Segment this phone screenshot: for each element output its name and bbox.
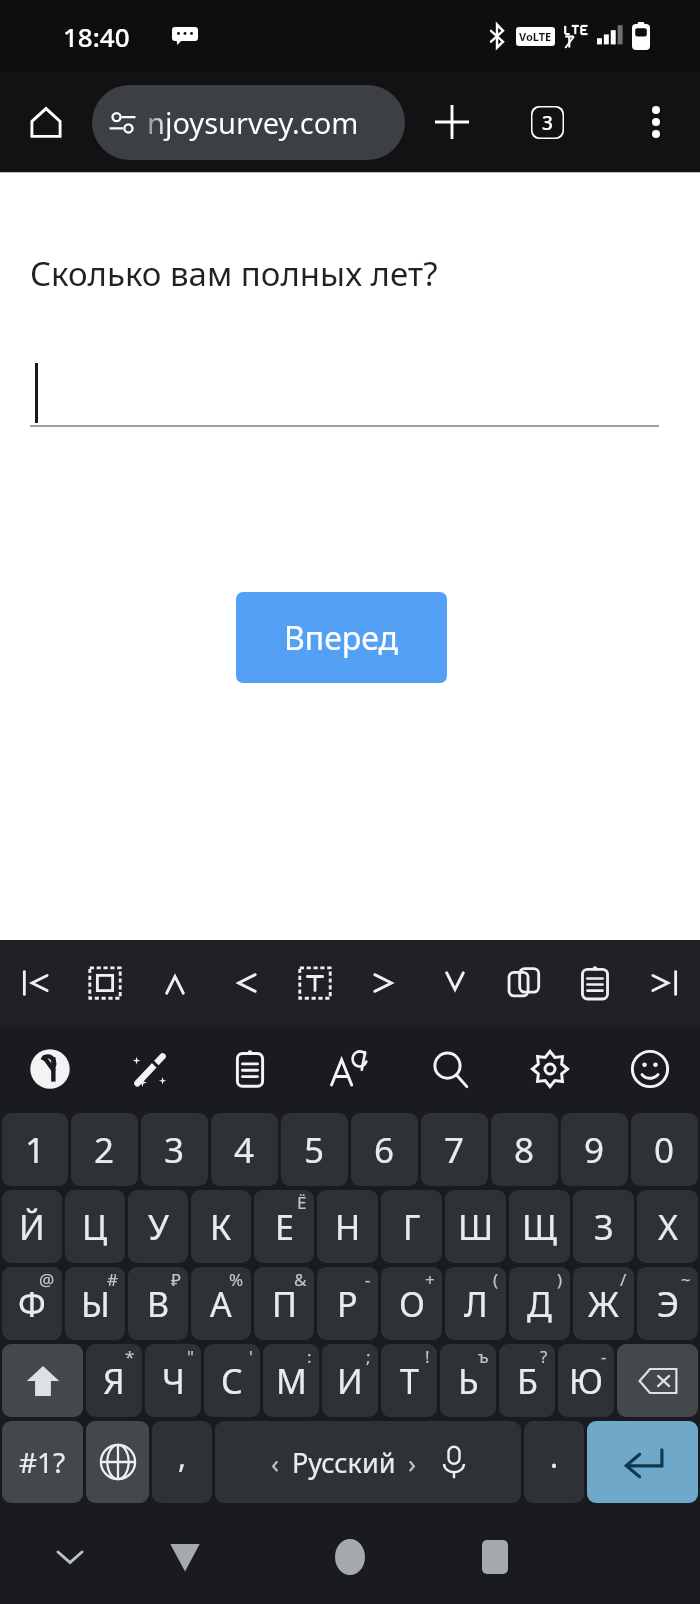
button[interactable]: Я (86, 1344, 142, 1417)
button[interactable]: К (191, 1190, 251, 1263)
button[interactable]: Back (155, 1527, 215, 1587)
button[interactable]: 5 (281, 1113, 348, 1186)
staticText: , (178, 1436, 187, 1477)
button[interactable]: Shift (2, 1344, 83, 1417)
button[interactable]: 7 (421, 1113, 488, 1186)
button[interactable]: Ч (145, 1344, 201, 1417)
button[interactable]: 3 (141, 1113, 208, 1186)
button[interactable]: Settings (500, 1025, 600, 1113)
button[interactable]: 6 (351, 1113, 418, 1186)
button[interactable]: У (128, 1190, 188, 1263)
staticText: Е (275, 1204, 294, 1250)
button[interactable]: Р (317, 1267, 378, 1340)
button[interactable]: Ю (558, 1344, 614, 1417)
staticText: С (221, 1358, 243, 1404)
staticText: ъ (478, 1345, 489, 1368)
button[interactable]: Вперед (236, 592, 447, 683)
button[interactable]: Х (637, 1190, 698, 1263)
button[interactable]: Tabs: 3 (515, 90, 579, 154)
button[interactable]: 4 (211, 1113, 278, 1186)
button[interactable]: Ы (65, 1267, 125, 1340)
staticText: Ч (162, 1358, 185, 1404)
staticText: Т (400, 1358, 419, 1404)
button[interactable]: njoysurvey.com (92, 85, 405, 160)
button[interactable]: Search (400, 1025, 500, 1113)
button[interactable]: Select text (280, 940, 350, 1025)
button[interactable]: Enter (587, 1421, 698, 1503)
staticText: ; (366, 1345, 371, 1368)
button[interactable]: New tab (420, 90, 484, 154)
button[interactable]: Ж (573, 1267, 634, 1340)
button[interactable]: Ф (2, 1267, 62, 1340)
button[interactable]: А (191, 1267, 251, 1340)
button[interactable]: Е (254, 1190, 314, 1263)
button[interactable]: . (524, 1421, 584, 1503)
button[interactable]: Right (350, 940, 420, 1025)
button[interactable]: Emoji (600, 1025, 700, 1113)
staticText: % (229, 1268, 244, 1291)
button[interactable]: Recent apps (465, 1527, 525, 1587)
staticText: / (620, 1268, 627, 1291)
button[interactable]: Copy (490, 940, 560, 1025)
button[interactable]: Left (210, 940, 280, 1025)
button[interactable]: И (322, 1344, 378, 1417)
button[interactable]: Э (637, 1267, 698, 1340)
button[interactable]: 2 (71, 1113, 138, 1186)
button[interactable]: Щ (509, 1190, 570, 1263)
button[interactable]: Magic wand (100, 1025, 200, 1113)
button[interactable]: #1? (2, 1421, 83, 1503)
staticText: Ф (18, 1281, 46, 1327)
staticText: #1? (19, 1443, 66, 1481)
button[interactable]: Ш (445, 1190, 506, 1263)
staticText: 8 (514, 1126, 535, 1174)
button[interactable]: Paste (560, 940, 630, 1025)
button[interactable]: Hide keyboard (40, 1527, 100, 1587)
button[interactable]: П (254, 1267, 314, 1340)
staticText: ₽ (171, 1268, 181, 1291)
staticText: Б (517, 1358, 538, 1404)
staticText: Г (403, 1204, 421, 1250)
button[interactable]: Г (381, 1190, 442, 1263)
button[interactable]: В (128, 1267, 188, 1340)
button[interactable]: Space (215, 1421, 521, 1503)
button[interactable]: Home (18, 94, 74, 150)
button[interactable]: Н (317, 1190, 378, 1263)
button[interactable]: , (152, 1421, 212, 1503)
button[interactable]: Л (445, 1267, 506, 1340)
staticText: › (408, 1445, 417, 1480)
button[interactable]: Backspace (617, 1344, 698, 1417)
button[interactable]: Й (2, 1190, 62, 1263)
button[interactable]: 0 (631, 1113, 698, 1186)
button[interactable]: 9 (561, 1113, 628, 1186)
staticText: В (147, 1281, 170, 1327)
staticText: 0 (654, 1126, 675, 1174)
button[interactable]: 8 (491, 1113, 558, 1186)
button[interactable]: З (573, 1190, 634, 1263)
staticText: Д (527, 1281, 552, 1327)
button[interactable]: Translate (300, 1025, 400, 1113)
button[interactable]: Т (381, 1344, 437, 1417)
button[interactable]: М (263, 1344, 319, 1417)
button[interactable] (30, 359, 659, 427)
staticText: ( (493, 1268, 499, 1291)
button[interactable]: More options (626, 92, 686, 152)
button[interactable]: Yandex (0, 1025, 100, 1113)
button[interactable]: Change language (86, 1421, 149, 1503)
staticText: 1 (25, 1126, 46, 1174)
button[interactable]: Move to end (630, 940, 700, 1025)
button[interactable]: Home (320, 1527, 380, 1587)
button[interactable]: Up (140, 940, 210, 1025)
button[interactable]: Д (509, 1267, 570, 1340)
staticText: ? (540, 1345, 548, 1368)
button[interactable]: О (381, 1267, 442, 1340)
button[interactable]: С (204, 1344, 260, 1417)
button[interactable]: Б (499, 1344, 555, 1417)
button[interactable]: Ц (65, 1190, 125, 1263)
button[interactable]: Clipboard (200, 1025, 300, 1113)
button[interactable]: Ь (440, 1344, 496, 1417)
staticText: Й (19, 1204, 45, 1250)
button[interactable]: 1 (2, 1113, 68, 1186)
button[interactable]: Move to start (0, 940, 70, 1025)
button[interactable]: Down (420, 940, 490, 1025)
button[interactable]: Select all (70, 940, 140, 1025)
